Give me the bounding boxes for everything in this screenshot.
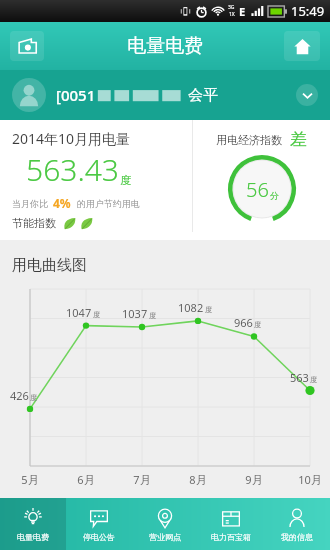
staticText: 56 xyxy=(246,176,269,203)
staticText: 的用户节约用电 xyxy=(77,198,140,209)
staticText: 426 xyxy=(10,388,29,403)
staticText: E xyxy=(239,4,246,19)
staticText: 1037 xyxy=(122,306,148,321)
button[interactable]: 电力百宝箱 xyxy=(198,498,264,550)
button[interactable]: 营业网点 xyxy=(132,498,198,550)
staticText: 电量电费 xyxy=(127,34,203,58)
button[interactable]: Wallet xyxy=(10,31,44,61)
staticText: 度 xyxy=(93,310,100,319)
button[interactable]: Home xyxy=(284,31,320,61)
staticText: 电力百宝箱 xyxy=(211,532,251,542)
staticText: 度 xyxy=(205,305,212,314)
button[interactable]: [0051 xyxy=(0,70,330,120)
staticText: 当月你比 xyxy=(12,198,48,209)
staticText: 度 xyxy=(310,375,317,384)
button[interactable]: Expand account xyxy=(296,84,318,106)
staticText: 1X xyxy=(229,11,235,18)
staticText: 4% xyxy=(53,195,71,211)
staticText: 电量电费 xyxy=(17,532,49,542)
staticText: 分 xyxy=(270,190,279,201)
staticText: 我的信息 xyxy=(281,532,313,542)
staticText: 8月 xyxy=(185,472,211,487)
staticText: 停电公告 xyxy=(83,532,115,542)
staticText: 563 xyxy=(290,370,309,385)
staticText: 6月 xyxy=(73,472,99,487)
staticText: 3G xyxy=(228,4,235,11)
staticText: 度 xyxy=(149,311,156,320)
staticText: 7月 xyxy=(129,472,155,487)
staticText: 15:49 xyxy=(291,2,325,20)
staticText: 5月 xyxy=(17,472,43,487)
staticText: 563.43 xyxy=(26,149,119,190)
button[interactable]: 停电公告 xyxy=(66,498,132,550)
staticText: 度 xyxy=(254,320,261,329)
staticText: 1047 xyxy=(66,305,92,320)
button[interactable]: 电量电费 xyxy=(0,498,66,550)
staticText: 2014年10月用电量 xyxy=(12,129,131,148)
staticText: 度 xyxy=(120,173,131,187)
staticText: 会平 xyxy=(188,86,218,105)
staticText: 9月 xyxy=(241,472,267,487)
staticText: 1082 xyxy=(178,300,204,315)
staticText: 用电曲线图 xyxy=(12,256,87,275)
staticText: [0051 xyxy=(56,85,96,105)
button[interactable]: 我的信息 xyxy=(264,498,330,550)
staticText: 用电经济指数 xyxy=(216,133,282,147)
staticText: 966 xyxy=(234,315,253,330)
staticText: 节能指数 xyxy=(12,216,56,230)
staticText: 10月 xyxy=(297,472,323,487)
staticText: 差 xyxy=(290,129,307,150)
staticText: 度 xyxy=(30,393,37,402)
staticText: 营业网点 xyxy=(149,532,181,542)
